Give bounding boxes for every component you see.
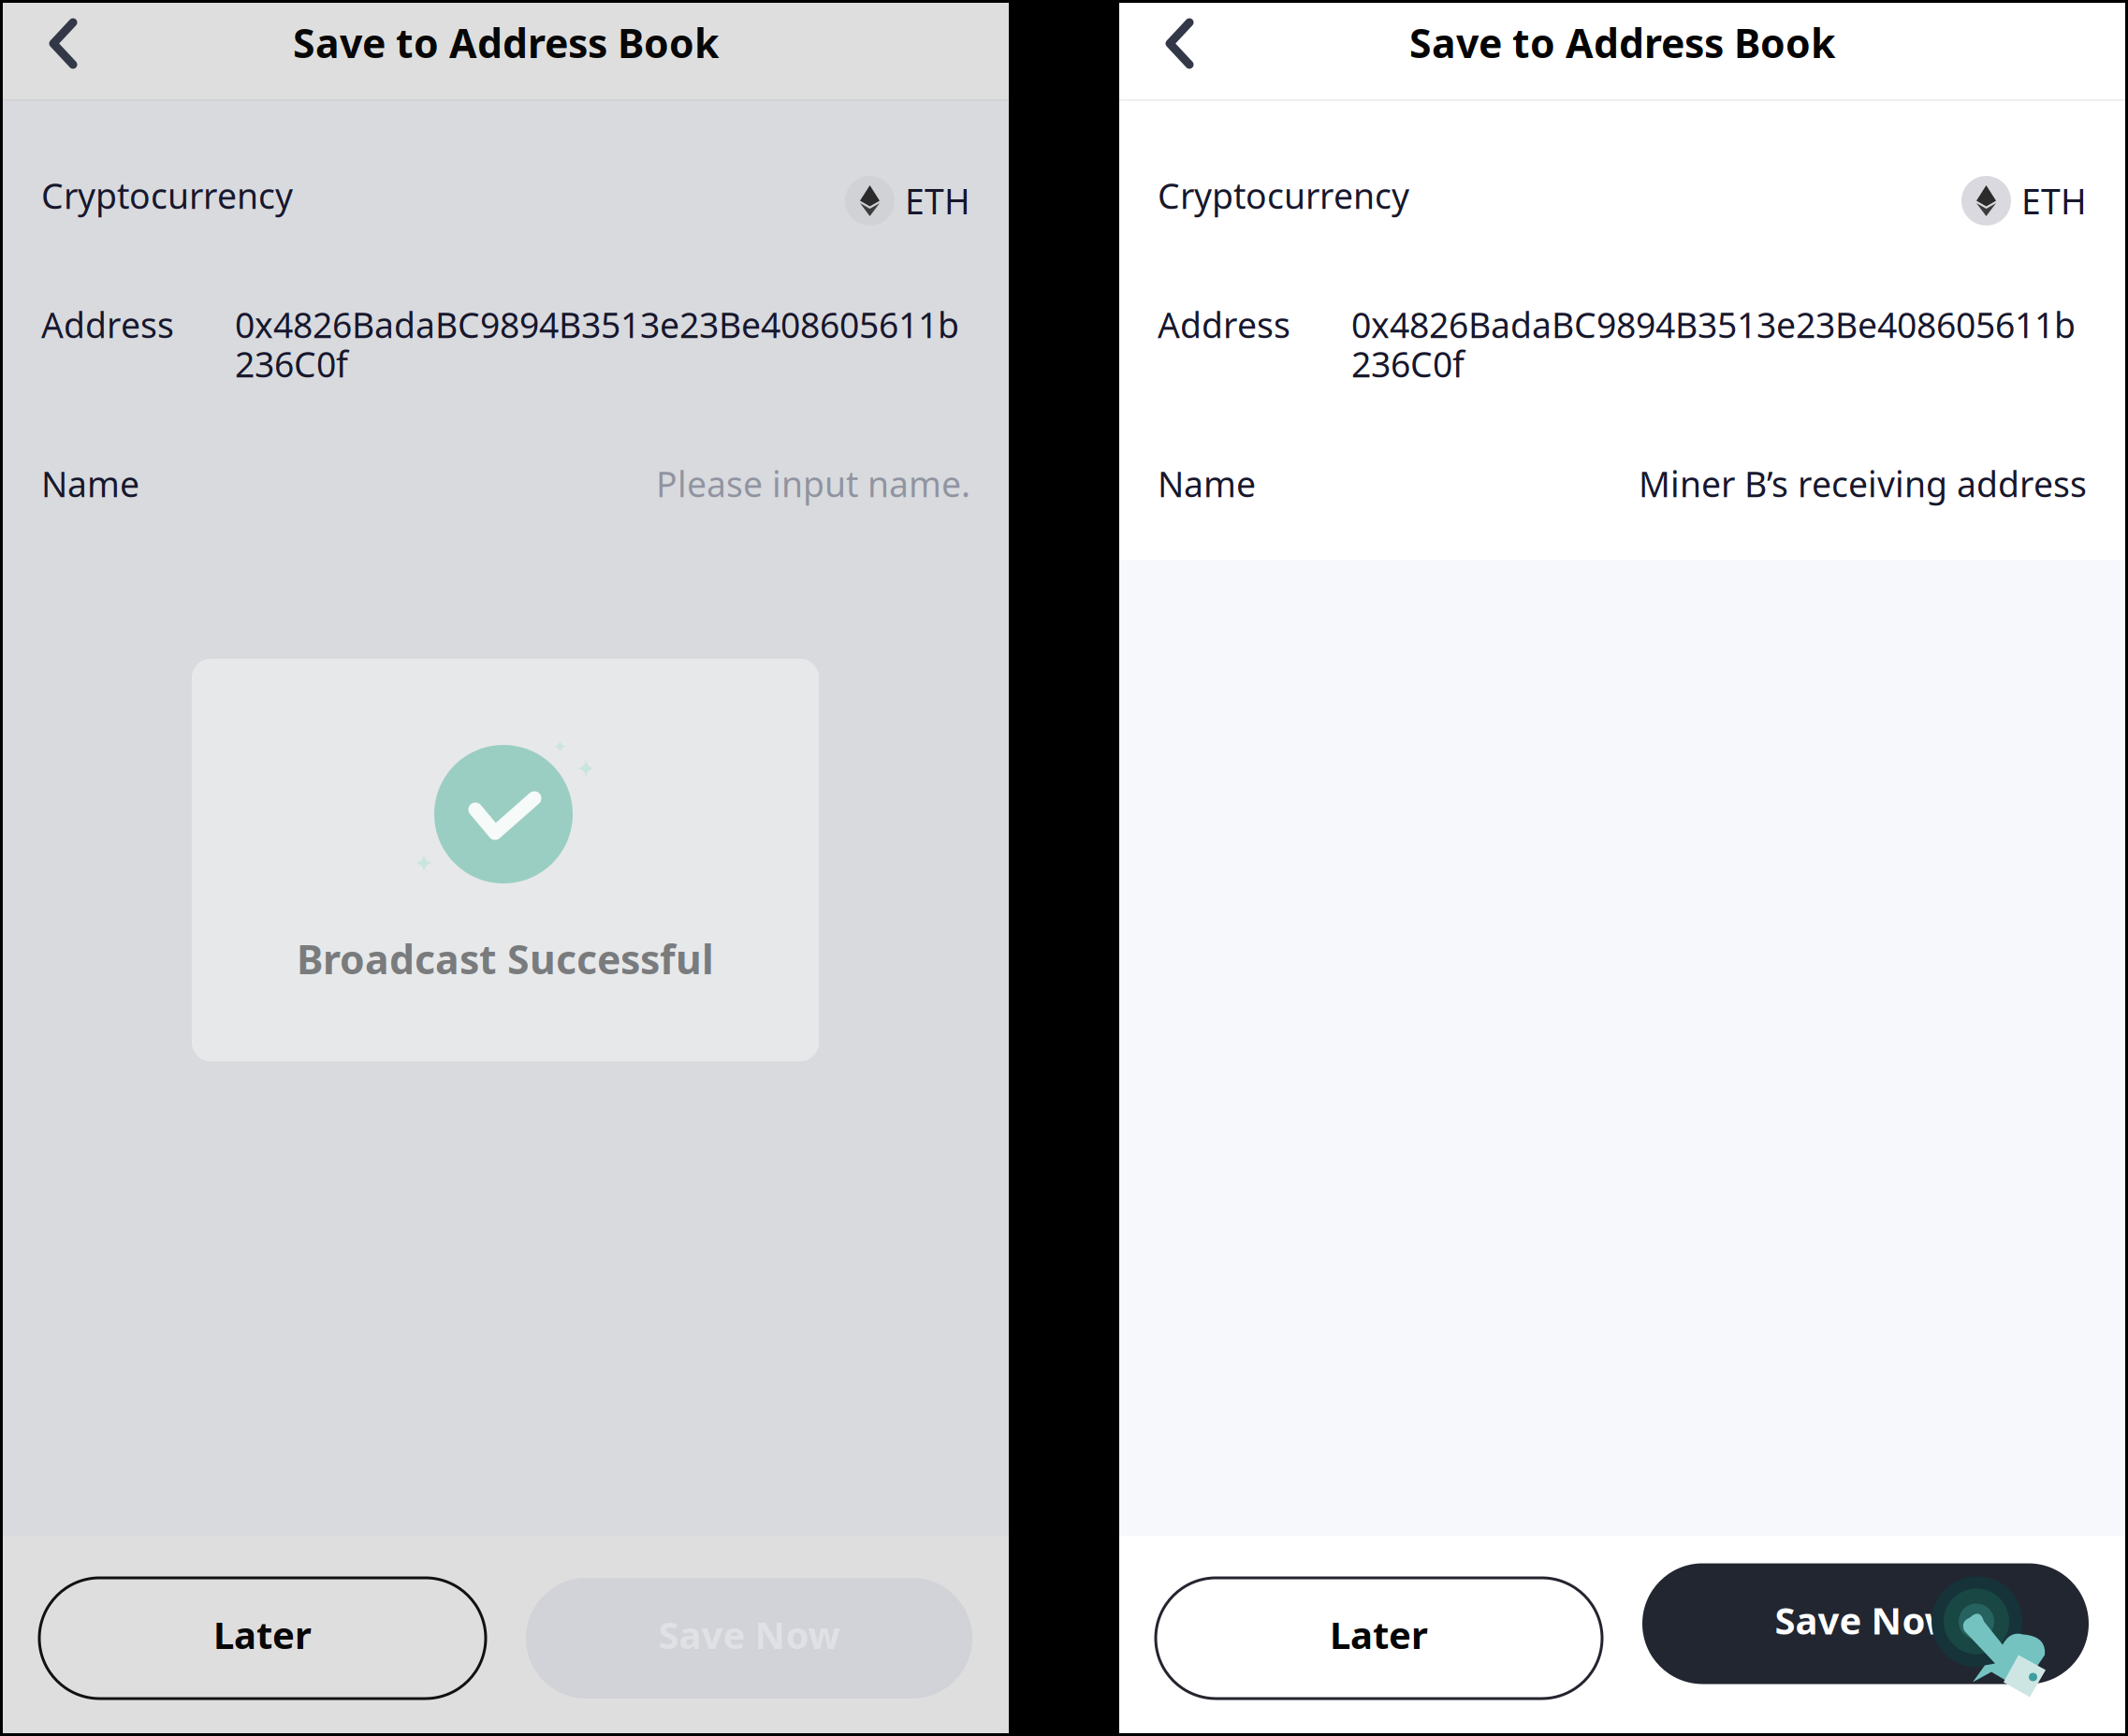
button[interactable]: Cryptocurrency [1158, 165, 2087, 240]
button[interactable]: Back [1119, 3, 1213, 101]
staticText: ETH [905, 178, 970, 224]
staticText: Miner B’s receiving address [1639, 460, 2087, 507]
staticText: Later [1330, 1610, 1428, 1659]
button[interactable]: Name [1158, 444, 2087, 518]
staticText: ETH [2021, 178, 2087, 224]
staticText: Name [41, 460, 139, 507]
button[interactable]: Later [39, 1578, 486, 1699]
staticText: Address [1158, 301, 1290, 348]
button[interactable]: Save Now [526, 1578, 972, 1699]
staticText: Save Now [658, 1610, 840, 1659]
staticText: Save Now [1775, 1595, 1956, 1645]
button[interactable]: Name [41, 444, 970, 518]
staticText: 0x4826BadaBC9894B3513e23Be408605611b [235, 301, 959, 348]
staticText: Save to Address Book [293, 16, 719, 69]
staticText: 236C0f [235, 341, 348, 387]
staticText: 236C0f [1351, 341, 1465, 387]
button[interactable]: Cryptocurrency [41, 165, 970, 240]
staticText: Later [213, 1610, 312, 1659]
staticText: Please input name. [656, 460, 970, 507]
staticText: Cryptocurrency [41, 172, 293, 219]
button[interactable]: Save Now [1642, 1563, 2089, 1684]
staticText: 0x4826BadaBC9894B3513e23Be408605611b [1351, 301, 2076, 348]
staticText: Cryptocurrency [1158, 172, 1409, 219]
button[interactable]: Later [1156, 1578, 1602, 1699]
button[interactable]: Back [3, 3, 96, 101]
staticText: Save to Address Book [1409, 16, 1835, 69]
staticText: Address [41, 301, 174, 348]
staticText: Name [1158, 460, 1256, 507]
staticText: Broadcast Successful [297, 932, 714, 985]
